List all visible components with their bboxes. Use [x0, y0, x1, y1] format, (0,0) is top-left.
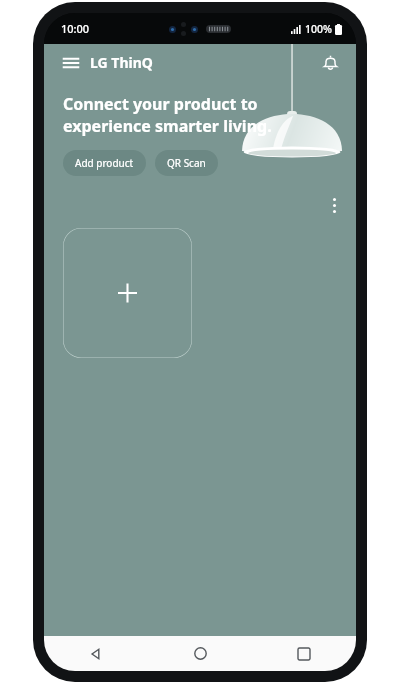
- button[interactable]: Add product: [63, 150, 146, 176]
- button[interactable]: More options: [327, 192, 342, 219]
- staticText: Add product: [75, 156, 134, 170]
- staticText: Connect your product to experience smart…: [63, 93, 346, 137]
- staticText: QR Scan: [167, 156, 206, 170]
- button[interactable]: Add product: [63, 228, 192, 358]
- button[interactable]: Back: [44, 636, 148, 671]
- button[interactable]: Home: [148, 636, 252, 671]
- other: Open menu: [62, 54, 80, 72]
- staticText: 100%: [305, 22, 332, 36]
- button[interactable]: QR Scan: [155, 150, 218, 176]
- staticText: LG ThinQ: [90, 53, 153, 72]
- staticText: 10:00: [61, 21, 90, 36]
- button[interactable]: Recents: [252, 636, 356, 671]
- button[interactable]: Notifications: [317, 49, 344, 76]
- button[interactable]: Open menu: [56, 49, 159, 76]
